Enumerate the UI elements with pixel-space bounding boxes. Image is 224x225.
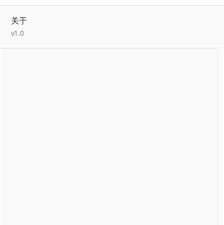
staticText: v1.0 [11, 29, 24, 38]
staticText: 关于 [11, 16, 27, 26]
